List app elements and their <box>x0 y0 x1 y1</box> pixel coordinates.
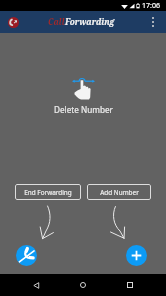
button[interactable]: Add Number <box>87 184 151 200</box>
button[interactable]: Recents <box>123 278 137 292</box>
staticText: Forwarding <box>65 16 115 27</box>
staticText: 17:06 <box>142 1 160 11</box>
button[interactable]: App icon <box>8 17 19 28</box>
button[interactable]: Back <box>29 278 43 292</box>
button[interactable]: End Forwarding <box>15 184 81 200</box>
button[interactable]: Home <box>76 278 90 292</box>
button[interactable]: End call forwarding <box>16 245 37 266</box>
staticText: Add Number <box>100 188 139 197</box>
staticText: End Forwarding <box>24 188 72 197</box>
button[interactable]: More options <box>147 16 159 28</box>
button[interactable]: Add <box>126 245 147 266</box>
staticText: Call <box>48 16 65 27</box>
staticText: Delete Number <box>54 104 113 115</box>
